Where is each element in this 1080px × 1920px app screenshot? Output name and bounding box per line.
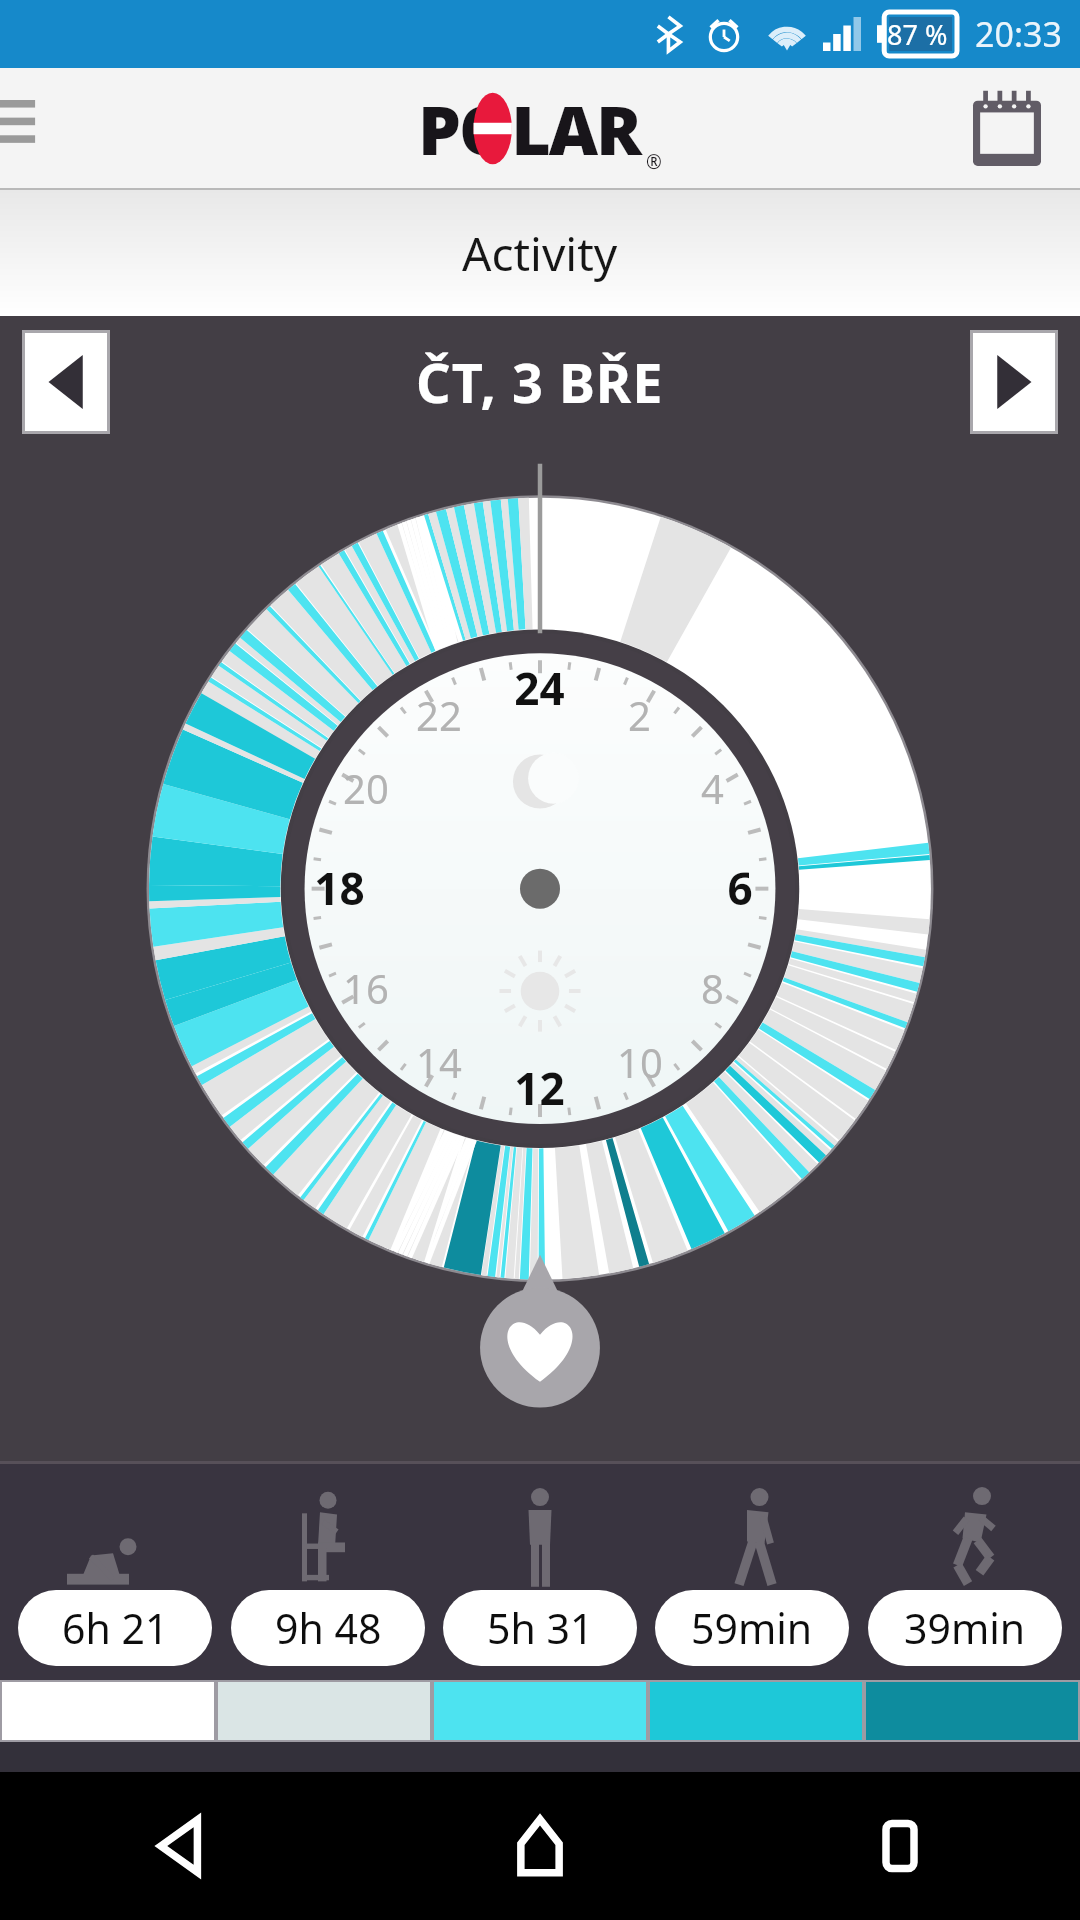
button[interactable]: 5h 31 [443, 1590, 637, 1666]
staticText: 12 [514, 1058, 565, 1118]
staticText: 2 [628, 688, 651, 742]
staticText: 8 [701, 961, 724, 1015]
staticText: ® [646, 149, 662, 175]
staticText: 9h 48 [275, 1600, 382, 1656]
staticText: 22 [416, 688, 462, 742]
staticText: 20 [343, 761, 389, 815]
button[interactable]: Back [0, 1772, 360, 1920]
staticText: ČT, 3 BŘE [416, 345, 664, 419]
staticText: 39min [904, 1600, 1026, 1656]
button[interactable]: Diary [964, 85, 1050, 171]
button[interactable]: Previous day [25, 333, 107, 431]
button[interactable]: 9h 48 [231, 1590, 425, 1666]
staticText: 4 [701, 761, 724, 815]
button[interactable]: Next day [973, 333, 1055, 431]
staticText: 14 [416, 1035, 462, 1089]
staticText: POLAR [418, 82, 641, 175]
staticText: 87 % [887, 16, 948, 53]
staticText: 59min [691, 1600, 813, 1656]
staticText: 6h 21 [62, 1600, 169, 1656]
staticText: 6 [727, 858, 753, 918]
staticText: 18 [314, 858, 365, 918]
staticText: 20:33 [975, 11, 1062, 57]
staticText: 16 [343, 961, 389, 1015]
button[interactable]: 39min [868, 1590, 1062, 1666]
button[interactable]: 59min [655, 1590, 849, 1666]
button[interactable]: Recents [720, 1772, 1080, 1920]
button[interactable]: 6h 21 [18, 1590, 212, 1666]
staticText: Activity [462, 222, 618, 285]
button[interactable]: Home [360, 1772, 720, 1920]
button[interactable]: Menu [0, 68, 96, 188]
staticText: 24 [514, 658, 565, 718]
staticText: 5h 31 [487, 1600, 594, 1656]
staticText: 10 [617, 1035, 663, 1089]
